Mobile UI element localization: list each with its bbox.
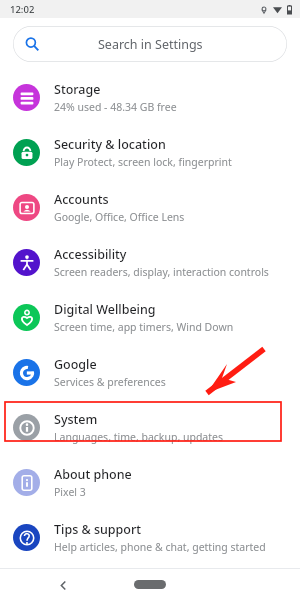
button[interactable]: Google <box>0 345 300 400</box>
staticText: Search in Settings <box>98 36 203 53</box>
button[interactable]: Back <box>52 574 74 596</box>
staticText: Play Protect, screen lock, fingerprint <box>54 155 232 169</box>
staticText: Screen readers, display, interaction con… <box>54 265 269 279</box>
staticText: Accounts <box>54 191 109 208</box>
staticText: Help articles, phone & chat, getting sta… <box>54 540 266 554</box>
button[interactable]: Storage <box>0 70 300 125</box>
staticText: Pixel 3 <box>54 485 86 499</box>
staticText: System <box>54 411 98 428</box>
staticText: 24% used - 48.34 GB free <box>54 100 177 114</box>
staticText: Google <box>54 356 97 373</box>
button[interactable]: Accessibility <box>0 235 300 290</box>
staticText: Languages, time, backup, updates <box>54 430 223 444</box>
staticText: 12:02 <box>10 3 35 16</box>
staticText: Screen time, app timers, Wind Down <box>54 320 234 334</box>
staticText: Storage <box>54 81 101 98</box>
button[interactable]: Security & location <box>0 125 300 180</box>
button[interactable]: System <box>0 400 300 455</box>
button[interactable]: Tips & support <box>0 510 300 565</box>
button[interactable]: About phone <box>0 455 300 510</box>
button[interactable]: Digital Wellbeing <box>0 290 300 345</box>
staticText: Tips & support <box>54 521 142 538</box>
button[interactable]: Home <box>134 580 166 589</box>
staticText: About phone <box>54 466 132 483</box>
staticText: Security & location <box>54 136 166 153</box>
staticText: Digital Wellbeing <box>54 301 156 318</box>
button[interactable]: Accounts <box>0 180 300 235</box>
button[interactable]: Search in Settings <box>13 26 287 62</box>
staticText: Accessibility <box>54 246 127 263</box>
staticText: Services & preferences <box>54 375 166 389</box>
staticText: Google, Office, Office Lens <box>54 210 185 224</box>
